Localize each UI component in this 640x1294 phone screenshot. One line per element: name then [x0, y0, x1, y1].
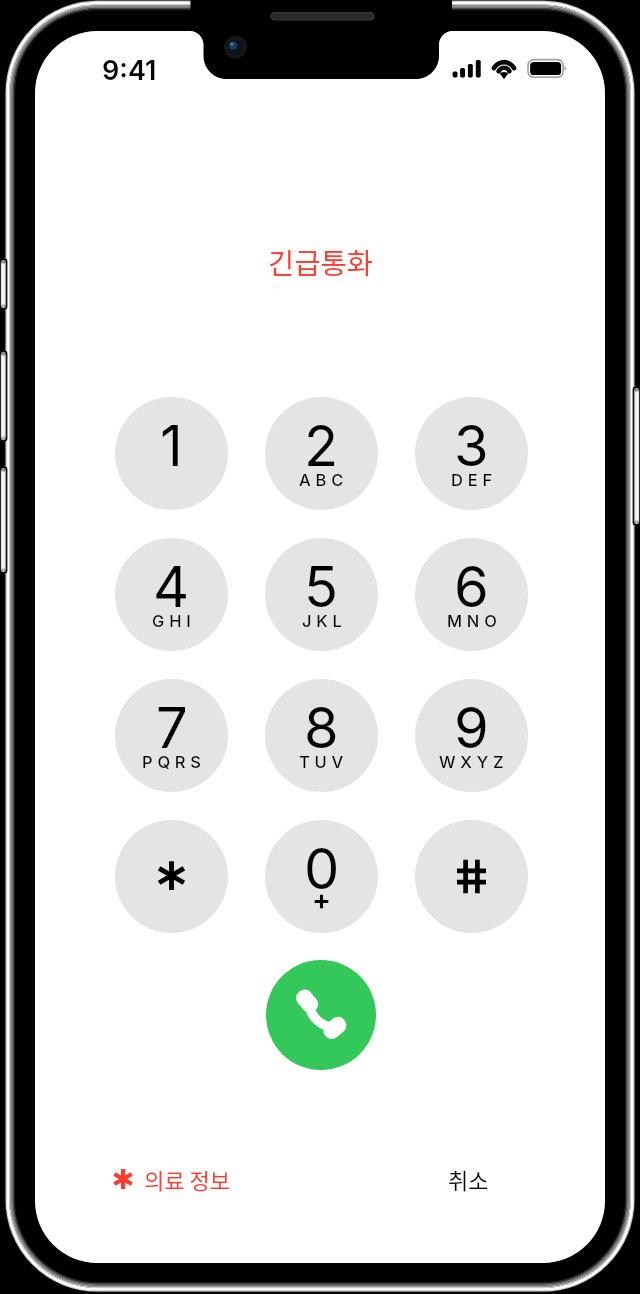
- staticText: M N O: [447, 611, 497, 631]
- staticText: 6: [454, 553, 489, 621]
- button[interactable]: 9: [415, 679, 528, 792]
- button[interactable]: 4: [115, 538, 228, 651]
- staticText: 2: [304, 412, 339, 480]
- staticText: D E F: [451, 470, 493, 490]
- button[interactable]: 취소: [448, 1161, 489, 1197]
- staticText: 8: [304, 694, 339, 762]
- staticText: 9: [454, 694, 489, 762]
- staticText: T U V: [299, 752, 344, 772]
- staticText: 4: [153, 553, 190, 621]
- staticText: 긴급통화: [268, 241, 373, 282]
- button[interactable]: 3: [415, 397, 528, 510]
- button[interactable]: 7: [115, 679, 228, 792]
- button[interactable]: 6: [415, 538, 528, 651]
- staticText: P Q R S: [142, 752, 202, 772]
- staticText: 9:41: [102, 54, 157, 87]
- button[interactable]: 2: [265, 397, 378, 510]
- staticText: 7: [156, 694, 188, 762]
- staticText: 1: [160, 412, 183, 480]
- button[interactable]: [415, 820, 528, 933]
- button[interactable]: 0: [265, 820, 378, 933]
- staticText: 3: [454, 412, 489, 480]
- staticText: W X Y Z: [439, 752, 504, 772]
- staticText: 취소: [448, 1163, 489, 1195]
- staticText: 의료 정보: [144, 1163, 230, 1195]
- staticText: J K L: [302, 611, 342, 631]
- button[interactable]: Call: [266, 960, 376, 1070]
- staticText: A B C: [299, 470, 344, 490]
- staticText: 0: [304, 835, 340, 903]
- staticText: G H I: [152, 611, 191, 631]
- staticText: 5: [304, 553, 339, 621]
- button[interactable]: 의료 정보: [112, 1161, 230, 1197]
- button[interactable]: 5: [265, 538, 378, 651]
- button[interactable]: [115, 820, 228, 933]
- button[interactable]: 1: [115, 397, 228, 510]
- button[interactable]: 8: [265, 679, 378, 792]
